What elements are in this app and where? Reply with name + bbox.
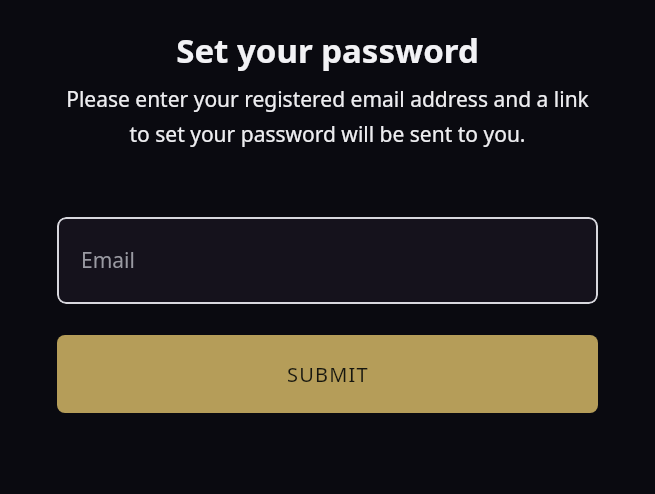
- button[interactable]: Email: [57, 217, 598, 304]
- staticText: Set your password: [24, 28, 631, 73]
- staticText: Email: [81, 246, 135, 275]
- staticText: Please enter your registered email addre…: [56, 85, 599, 149]
- staticText: SUBMIT: [287, 361, 369, 388]
- button[interactable]: Submit: [57, 335, 598, 413]
